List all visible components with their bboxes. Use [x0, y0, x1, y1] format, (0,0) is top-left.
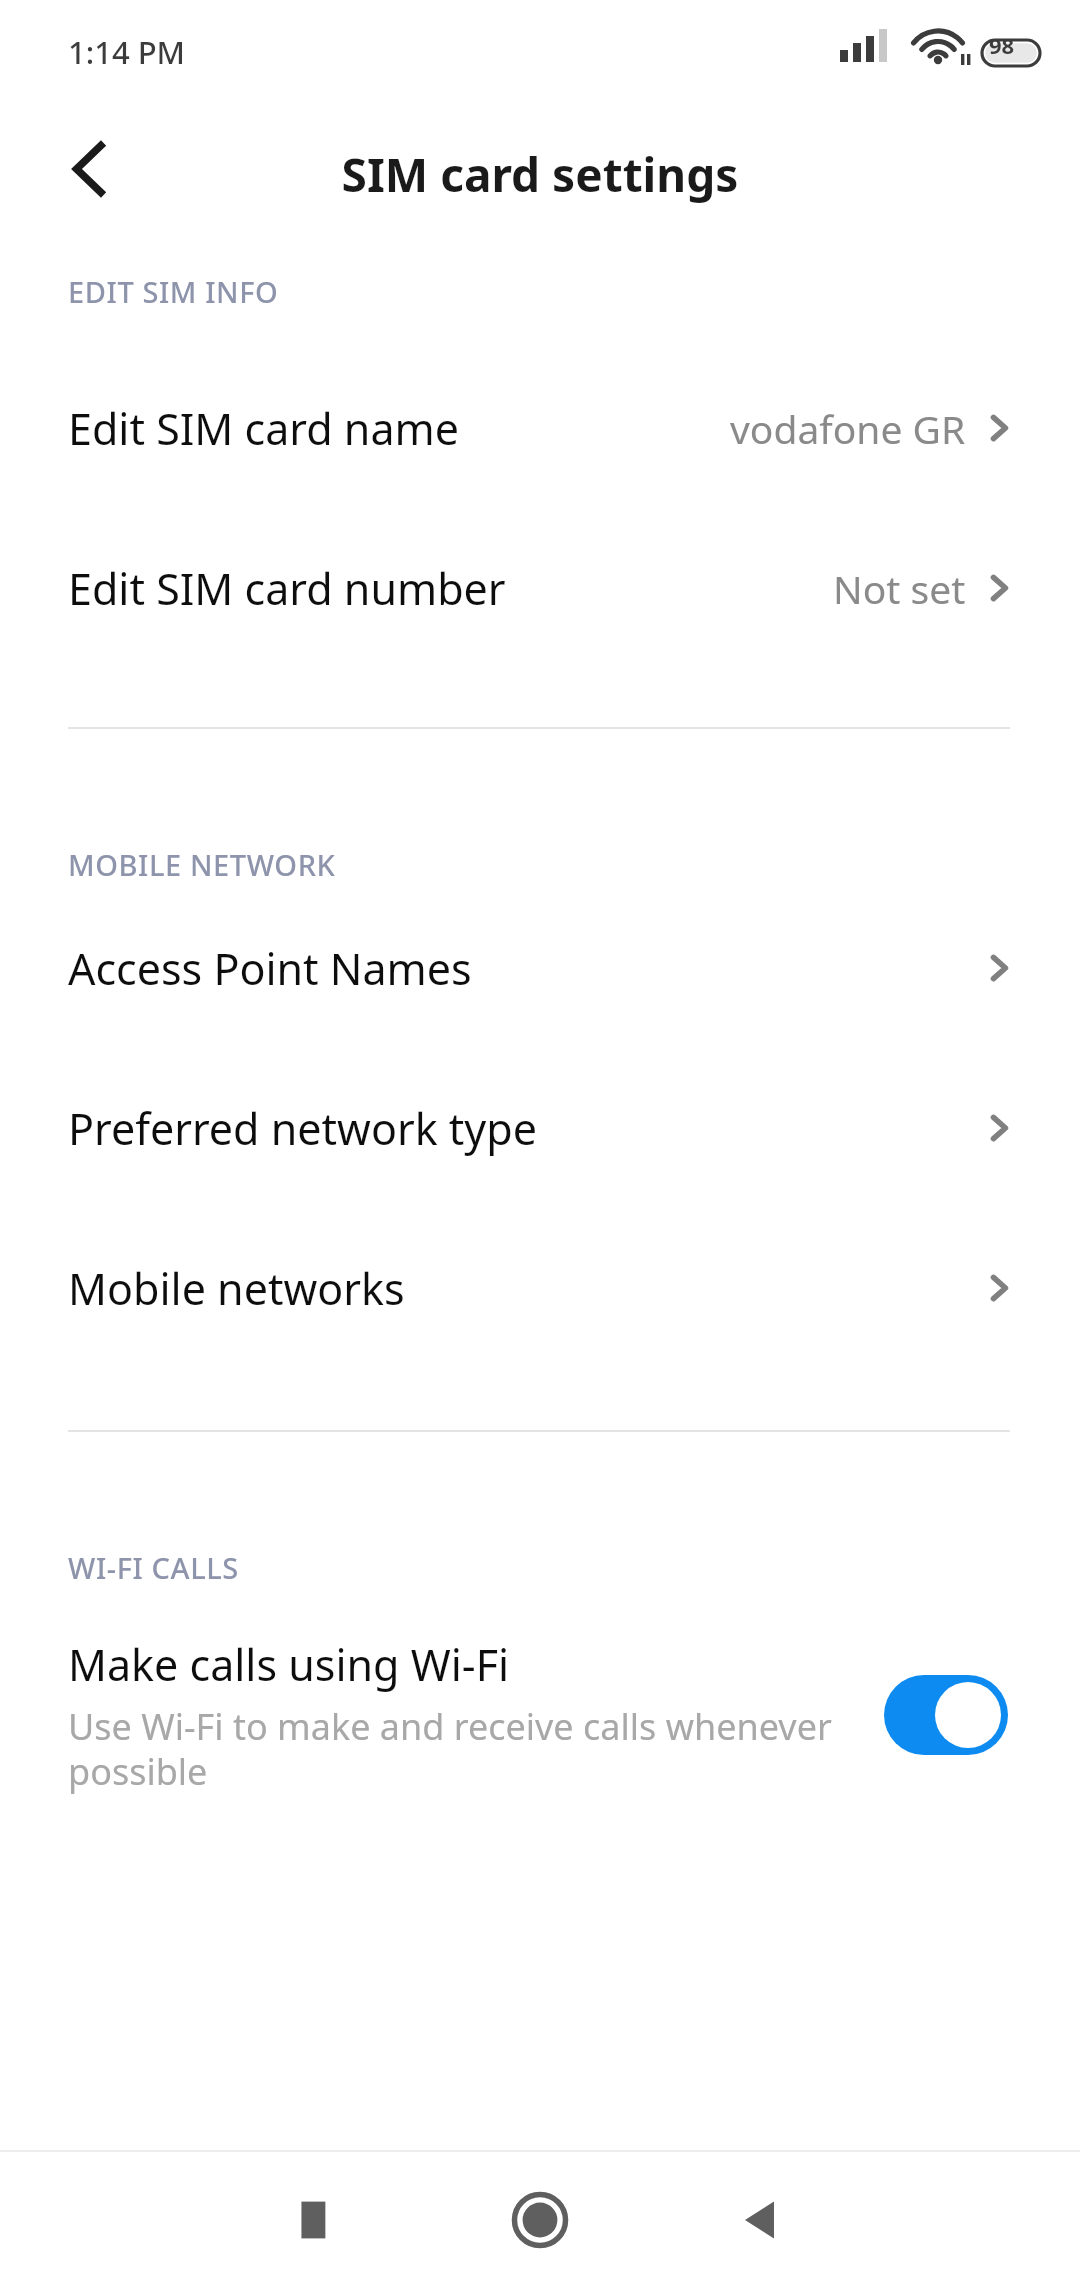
staticText: MOBILE NETWORK — [68, 845, 336, 884]
button[interactable]: Edit SIM card name — [0, 373, 1080, 483]
button[interactable]: Make calls using Wi-Fi — [0, 1610, 1080, 1820]
button[interactable]: Access Point Names — [0, 913, 1080, 1023]
button[interactable]: Mobile networks — [0, 1233, 1080, 1343]
staticText: Not set — [833, 562, 966, 615]
staticText: Preferred network type — [68, 1099, 537, 1158]
staticText: Edit SIM card name — [68, 399, 459, 458]
staticText: Access Point Names — [68, 939, 472, 998]
button[interactable]: Preferred network type — [0, 1073, 1080, 1183]
staticText: vodafone GR — [730, 402, 966, 455]
staticText: WI-FI CALLS — [68, 1548, 239, 1587]
button[interactable]: Home — [494, 2174, 586, 2266]
staticText: Make calls using Wi-Fi — [68, 1635, 510, 1694]
staticText: Use Wi-Fi to make and receive calls when… — [68, 1702, 838, 1796]
button[interactable]: Back — [714, 2174, 806, 2266]
button[interactable]: Recent apps — [272, 2174, 364, 2266]
staticText: Edit SIM card number — [68, 559, 506, 618]
staticText: EDIT SIM INFO — [68, 272, 279, 311]
button[interactable]: Make calls using Wi-Fi toggle — [884, 1675, 1008, 1755]
button[interactable]: Edit SIM card number — [0, 533, 1080, 643]
button[interactable]: Back — [42, 123, 134, 215]
staticText: Mobile networks — [68, 1259, 405, 1318]
staticText: 98 — [989, 30, 1015, 60]
staticText: 1:14 PM — [68, 31, 186, 73]
staticText: SIM card settings — [0, 143, 1080, 206]
